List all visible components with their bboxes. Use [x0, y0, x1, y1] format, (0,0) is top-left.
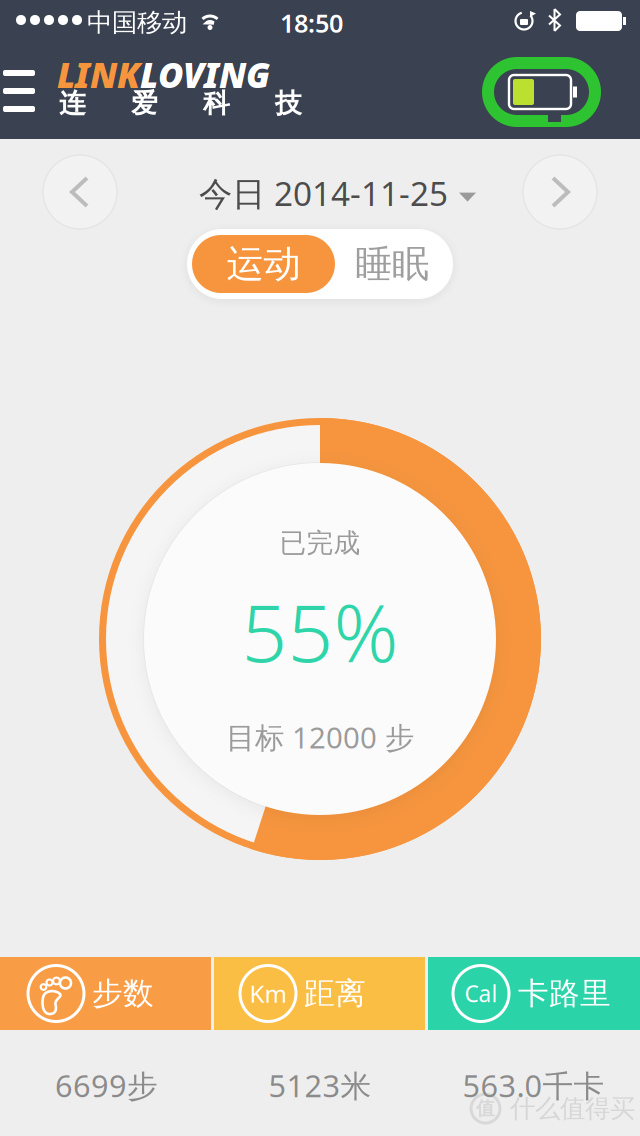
button[interactable]: Previous day — [43, 155, 117, 229]
staticText: Km — [249, 978, 286, 1009]
staticText: 什么值得买 — [510, 1093, 635, 1124]
staticText: 今日 2014-11-25 — [199, 171, 448, 215]
staticText: 5123米 — [268, 1065, 371, 1106]
button[interactable]: Cal — [428, 957, 640, 1030]
staticText: 6699步 — [55, 1065, 158, 1106]
staticText: 563.0千卡 — [462, 1065, 604, 1106]
button[interactable]: Menu — [0, 67, 35, 115]
button[interactable]: 今日 2014-11-25 — [199, 171, 476, 215]
staticText: 步数 — [92, 975, 154, 1012]
staticText: 值 — [476, 1097, 495, 1120]
staticText: 睡眠 — [355, 241, 429, 287]
staticText: 连 — [59, 87, 86, 120]
staticText: 18:50 — [280, 6, 343, 40]
button[interactable]: 步数 — [0, 957, 211, 1030]
staticText: Cal — [464, 978, 497, 1008]
button[interactable]: Bracelet battery — [488, 63, 595, 121]
staticText: 运动 — [226, 241, 300, 287]
staticText: 科 — [203, 87, 230, 120]
button[interactable]: Km — [214, 957, 425, 1030]
staticText: 目标 12000 步 — [226, 717, 414, 756]
button[interactable]: Next day — [523, 155, 597, 229]
button[interactable]: 睡眠 — [337, 229, 447, 299]
staticText: 已完成 — [279, 527, 360, 559]
staticText: LINK — [57, 51, 140, 98]
staticText: 55% — [241, 578, 398, 684]
button[interactable]: 运动 — [192, 235, 335, 293]
staticText: 爱 — [131, 87, 158, 120]
staticText: 距离 — [304, 975, 366, 1012]
staticText: LOVING — [140, 51, 270, 98]
staticText: 技 — [275, 87, 302, 120]
staticText: 中国移动 — [87, 7, 187, 38]
staticText: 卡路里 — [518, 975, 611, 1012]
